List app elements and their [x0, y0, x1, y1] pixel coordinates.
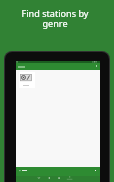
- staticText: Find stations by genre: [0, 7, 112, 29]
- button[interactable]: [19, 72, 35, 88]
